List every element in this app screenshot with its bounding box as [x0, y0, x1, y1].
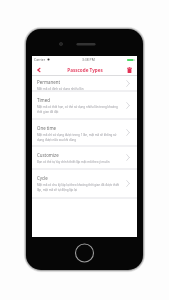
staticText: Carrier [34, 57, 46, 62]
staticText: One time [37, 125, 57, 131]
button[interactable]: One time [32, 120, 137, 145]
button[interactable]: Cycle [32, 170, 137, 197]
button[interactable]: Permanent [32, 76, 137, 90]
staticText: Customize [37, 152, 59, 158]
staticText: Cycle [37, 175, 48, 181]
staticText: Mật mã có thời hạn, có thể sử dụng nhiều… [37, 105, 120, 114]
button[interactable]: Timed [32, 92, 137, 118]
staticText: 3:38 PM [82, 57, 95, 62]
staticText: Permanent [37, 79, 61, 85]
staticText: Bạn có thể tự tùy chỉnh thiết lập mật mã… [37, 160, 110, 164]
staticText: Mật mã có chu kỳ lặp lại theo khoảng thờ… [37, 183, 120, 192]
button[interactable]: Customize [32, 147, 137, 168]
staticText: Mật mã cố định sử dụng nhiều lần [37, 87, 84, 90]
staticText: Timed [37, 97, 50, 103]
staticText: Mật mã chỉ sử dụng được trong 1 lần, mật… [37, 133, 120, 142]
button[interactable]: Back [32, 63, 45, 76]
staticText: Passcode Types [67, 67, 103, 73]
button[interactable]: Delete [122, 63, 137, 76]
